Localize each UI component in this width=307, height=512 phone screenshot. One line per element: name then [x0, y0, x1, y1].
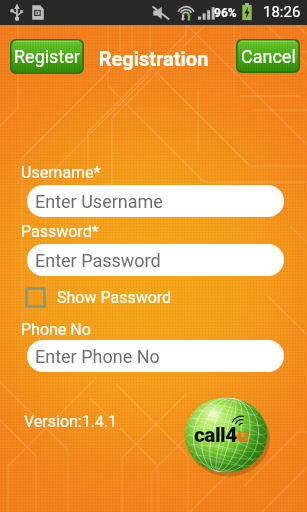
staticText: Phone No: [21, 320, 91, 339]
staticText: Password*: [21, 222, 99, 241]
staticText: 18:26: [263, 3, 301, 21]
staticText: Enter Username: [35, 191, 163, 212]
staticText: Show Password: [57, 288, 172, 307]
button[interactable]: Register: [10, 39, 84, 74]
staticText: Registration: [0, 47, 307, 70]
staticText: Register: [14, 46, 80, 67]
button[interactable]: Enter Username: [27, 185, 284, 217]
staticText: Enter Password: [35, 250, 161, 271]
button[interactable]: Enter Password: [27, 244, 284, 276]
staticText: Cancel: [241, 46, 296, 67]
staticText: 96%: [214, 6, 237, 20]
staticText: Version:1.4.1: [24, 412, 118, 431]
button[interactable]: Show Password: [25, 286, 172, 308]
staticText: call4: [194, 423, 237, 448]
staticText: u: [237, 423, 249, 448]
button[interactable]: Enter Phone No: [27, 340, 284, 372]
button[interactable]: Cancel: [236, 39, 300, 73]
staticText: Enter Phone No: [35, 346, 160, 367]
staticText: Username*: [21, 163, 101, 182]
